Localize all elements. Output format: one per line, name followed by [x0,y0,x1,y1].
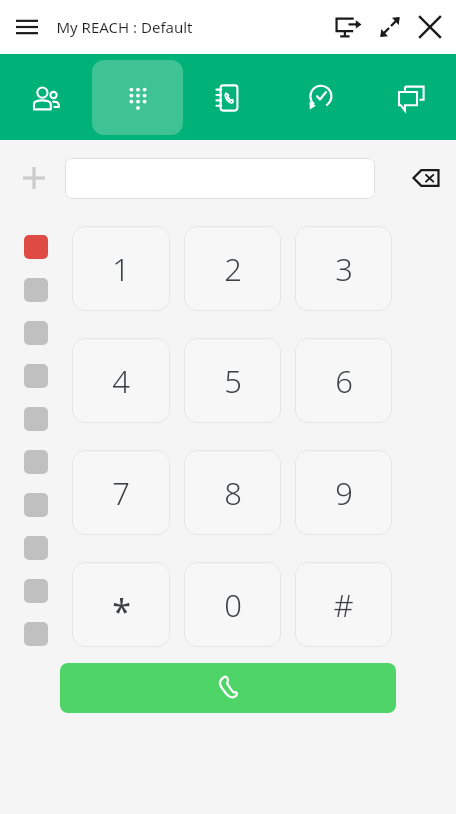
button[interactable]: 6 [295,338,392,423]
button[interactable]: Line 7 [24,493,48,517]
button[interactable]: Line 1 [24,235,48,259]
button[interactable]: 4 [72,338,170,423]
button[interactable]: Line 8 [24,536,48,560]
button[interactable]: 1 [72,226,170,311]
button[interactable]: 5 [184,338,281,423]
button[interactable]: Call [60,663,396,713]
button[interactable]: Line 6 [24,450,48,474]
button[interactable]: Add contact [14,158,54,198]
staticText: 6 [335,360,353,402]
staticText: My REACH : Default [56,17,193,37]
button[interactable]: Line 4 [24,364,48,388]
button[interactable]: Line 10 [24,622,48,646]
button[interactable]: 0 [184,562,281,647]
button[interactable]: 9 [295,450,392,535]
button[interactable]: Messages [365,54,456,140]
staticText: 4 [112,360,130,402]
staticText: 3 [335,248,353,290]
button[interactable]: Backspace [405,157,447,199]
button[interactable]: 7 [72,450,170,535]
button[interactable]: Line 3 [24,321,48,345]
button[interactable]: Phone book [183,54,274,140]
button[interactable]: 3 [295,226,392,311]
staticText: 0 [224,584,242,626]
button[interactable]: Line 5 [24,407,48,431]
staticText: 5 [224,360,242,402]
button[interactable]: Collapse [370,7,410,47]
staticText: 7 [112,472,130,514]
button[interactable]: Line 2 [24,278,48,302]
button[interactable]: Phone number [65,158,375,199]
button[interactable]: Keypad [92,54,183,140]
button[interactable]: * [72,562,170,647]
staticText: 9 [335,472,353,514]
button[interactable]: Contacts [0,54,92,140]
button[interactable]: Cast screen [326,5,370,49]
button[interactable]: Line 9 [24,579,48,603]
staticText: 1 [112,248,130,290]
button[interactable]: Menu [8,8,46,46]
staticText: # [333,584,354,626]
button[interactable]: Close [410,7,450,47]
button[interactable]: Recent calls [274,54,365,140]
button[interactable]: # [295,562,392,647]
button[interactable]: 2 [184,226,281,311]
staticText: 8 [224,472,242,514]
staticText: * [112,588,131,634]
button[interactable]: 8 [184,450,281,535]
staticText: 2 [224,248,242,290]
